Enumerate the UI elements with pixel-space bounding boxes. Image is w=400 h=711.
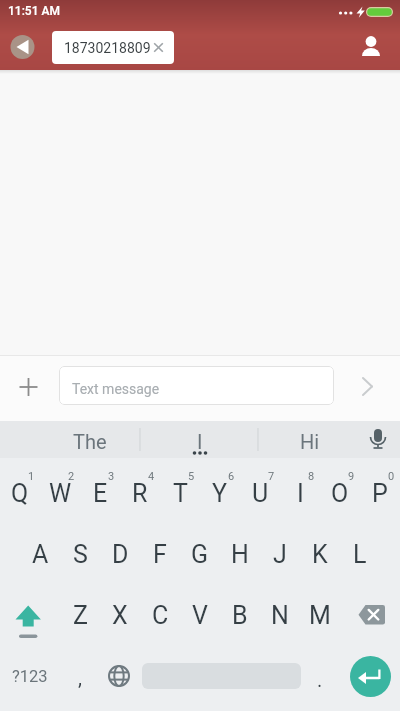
staticText: 7 [268, 470, 275, 483]
button[interactable] [8, 33, 36, 61]
button[interactable]: L [340, 526, 380, 582]
staticText: N [271, 601, 289, 630]
button[interactable]: P [360, 465, 400, 521]
button[interactable]: N [260, 587, 300, 643]
button[interactable]: I [280, 465, 320, 521]
button[interactable] [4, 583, 56, 641]
staticText: 1 [28, 470, 35, 483]
staticText: 8 [308, 470, 315, 483]
staticText: U [252, 479, 269, 508]
staticText: X [112, 601, 128, 630]
staticText: I [297, 479, 304, 508]
staticText: Text message [72, 381, 160, 397]
staticText: Y [212, 479, 228, 508]
staticText: O [331, 479, 349, 508]
button[interactable] [14, 373, 43, 402]
button[interactable]: W [40, 465, 80, 521]
button[interactable]: J [260, 526, 300, 582]
button[interactable] [350, 656, 391, 697]
staticText: F [153, 540, 167, 569]
staticText: K [312, 540, 328, 569]
staticText: The [73, 430, 107, 453]
staticText: C [152, 601, 169, 630]
staticText: M [309, 601, 331, 630]
staticText: R [132, 479, 148, 508]
staticText: 5 [188, 470, 195, 483]
button[interactable]: Hi [270, 424, 350, 458]
staticText: G [191, 540, 209, 569]
staticText: 4 [148, 470, 155, 483]
button[interactable]: O [320, 465, 360, 521]
staticText: D [112, 540, 129, 569]
staticText: 6 [228, 470, 235, 483]
button[interactable]: Y [200, 465, 240, 521]
staticText: 0 [388, 470, 395, 483]
staticText: S [73, 540, 88, 569]
button[interactable]: G [180, 526, 220, 582]
button[interactable]: F [140, 526, 180, 582]
staticText: 9 [348, 470, 355, 483]
button[interactable]: S [60, 526, 100, 582]
staticText: V [192, 601, 208, 630]
button[interactable] [101, 658, 137, 694]
button[interactable]: M [300, 587, 340, 643]
button[interactable]: T [160, 465, 200, 521]
button[interactable] [352, 371, 384, 403]
staticText: 3 [108, 470, 115, 483]
button[interactable]: , [62, 651, 98, 703]
button[interactable]: D [100, 526, 140, 582]
button[interactable]: The [42, 424, 138, 458]
button[interactable]: Q [0, 465, 40, 521]
staticText: A [32, 540, 49, 569]
button[interactable]: I [152, 424, 248, 458]
staticText: 2 [68, 470, 75, 483]
staticText: . [317, 668, 323, 691]
staticText: B [232, 601, 248, 630]
button[interactable] [362, 423, 395, 456]
staticText: ?123 [12, 667, 48, 686]
button[interactable] [357, 33, 385, 61]
staticText: I [197, 430, 203, 453]
button[interactable]: A [20, 526, 60, 582]
button[interactable]: E [80, 465, 120, 521]
button[interactable]: Z [60, 587, 100, 643]
staticText: 11:51 AM [8, 4, 60, 18]
staticText: J [273, 540, 287, 569]
staticText: E [93, 479, 108, 508]
staticText: Q [11, 479, 29, 508]
staticText: W [49, 479, 72, 508]
button[interactable]: K [300, 526, 340, 582]
button[interactable]: C [140, 587, 180, 643]
staticText: T [173, 479, 188, 508]
button[interactable]: Text message [59, 366, 334, 405]
button[interactable]: U [240, 465, 280, 521]
button[interactable]: . [302, 653, 338, 705]
staticText: , [78, 666, 82, 689]
staticText: H [231, 540, 249, 569]
button[interactable]: X [100, 587, 140, 643]
button[interactable]: H [220, 526, 260, 582]
staticText: L [353, 540, 367, 569]
staticText: Z [73, 601, 88, 630]
staticText: Hi [300, 430, 320, 453]
staticText: 18730218809 [64, 40, 151, 56]
button[interactable] [346, 586, 396, 636]
button[interactable]: ?123 [4, 650, 56, 702]
button[interactable]: R [120, 465, 160, 521]
button[interactable]: 18730218809 [52, 31, 174, 64]
button[interactable]: B [220, 587, 260, 643]
button[interactable]: V [180, 587, 220, 643]
staticText: P [372, 479, 388, 508]
